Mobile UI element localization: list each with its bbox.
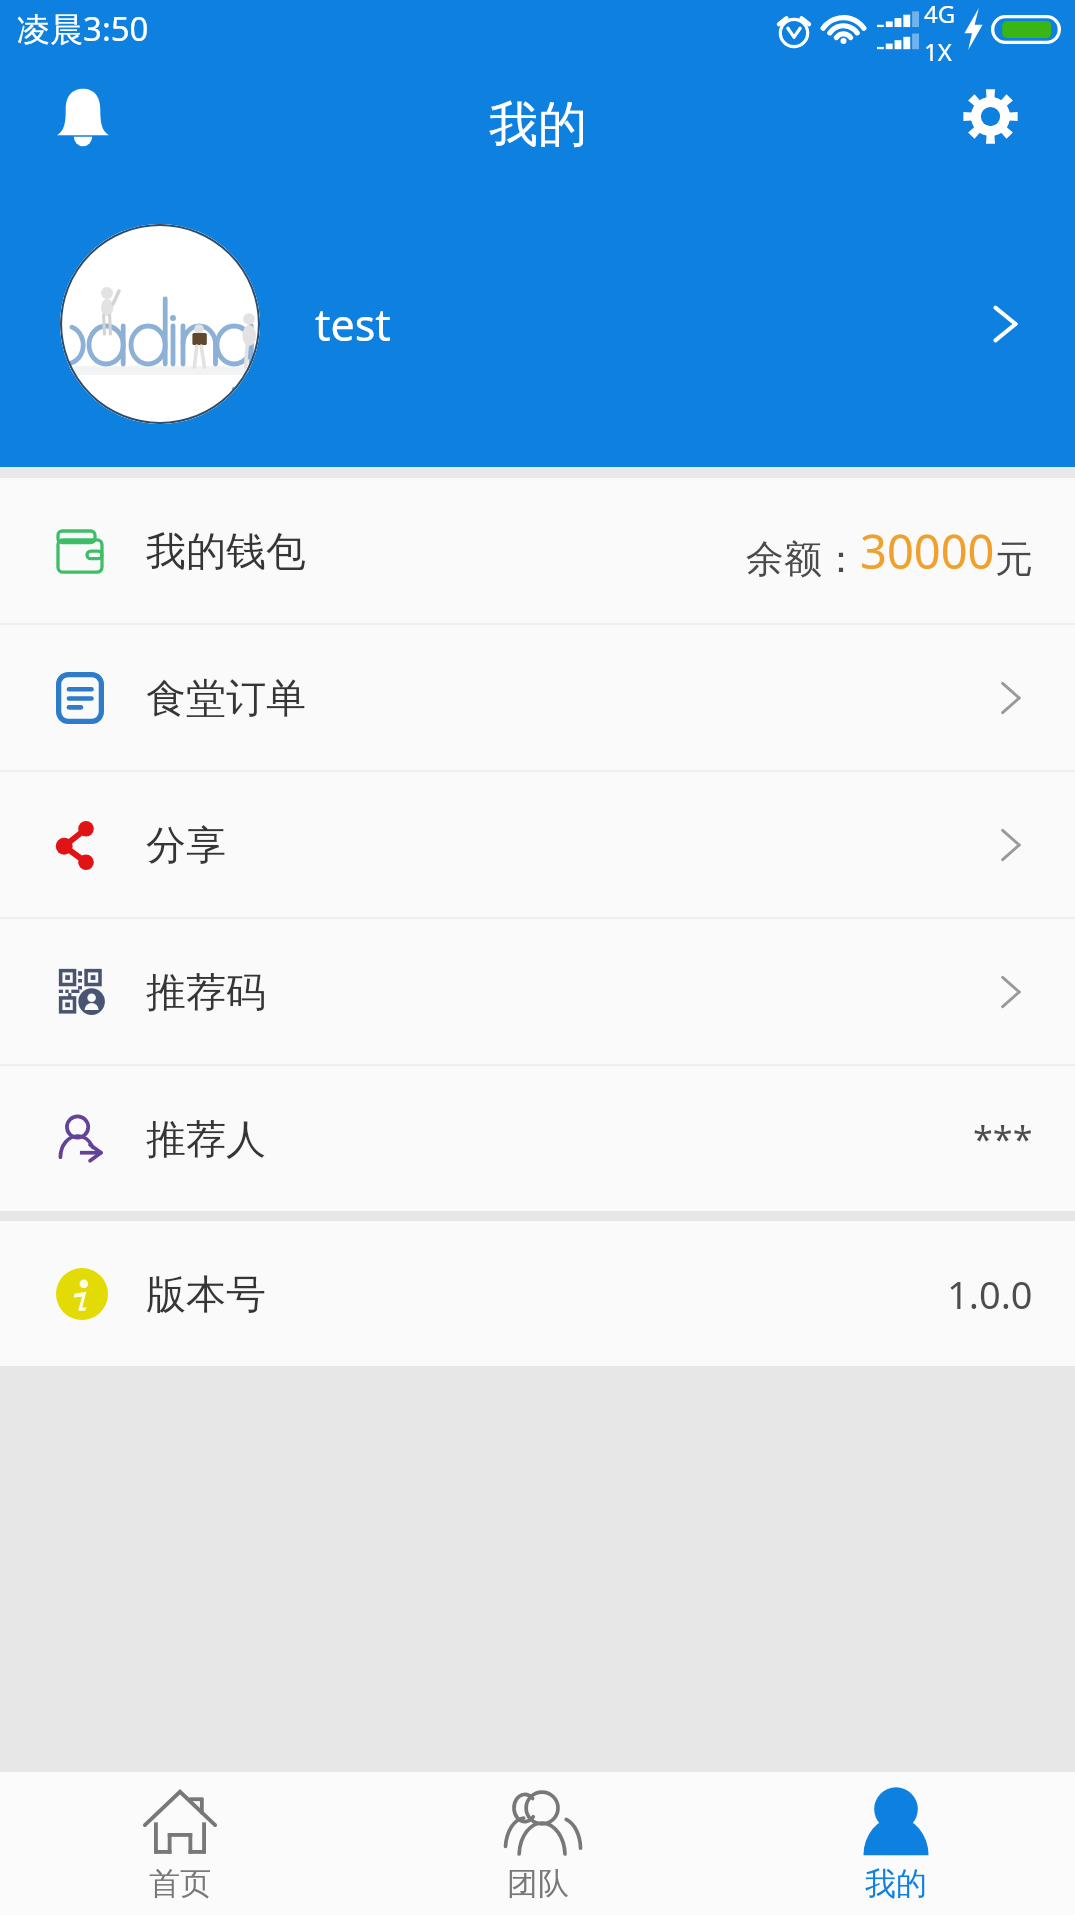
staticText: 元 [995,535,1033,583]
staticText: 1.0.0 [947,1268,1033,1320]
staticText: test [315,295,391,354]
staticText: 4G [924,0,956,30]
staticText: 首页 [149,1864,211,1903]
button[interactable]: 推荐人 [0,1066,1075,1211]
staticText: 我的 [865,1864,927,1903]
staticText: 凌晨3:50 [17,6,149,51]
staticText: 版本号 [146,1269,266,1319]
button[interactable]: 版本号 [0,1221,1075,1366]
button[interactable]: 我的 [717,1772,1075,1915]
button[interactable]: Notifications [41,73,125,157]
staticText: 我的 [489,94,587,156]
button[interactable]: 食堂订单 [0,625,1075,770]
staticText: 推荐码 [146,967,266,1017]
button[interactable]: 分享 [0,772,1075,917]
staticText: 推荐人 [146,1114,266,1164]
staticText: 我的钱包 [146,526,306,576]
button[interactable]: 团队 [359,1772,717,1915]
staticText: *** [973,1114,1033,1163]
button[interactable]: Settings [948,74,1032,158]
button[interactable]: test [0,182,1075,466]
staticText: 食堂订单 [146,673,306,723]
button[interactable]: 推荐码 [0,919,1075,1064]
staticText: 1X [924,35,952,61]
staticText: 余额： [746,535,860,583]
button[interactable]: 首页 [0,1772,359,1915]
staticText: 团队 [507,1864,569,1903]
staticText: 分享 [146,820,226,870]
staticText: 30000 [860,519,995,583]
button[interactable]: 我的钱包 [0,478,1075,623]
